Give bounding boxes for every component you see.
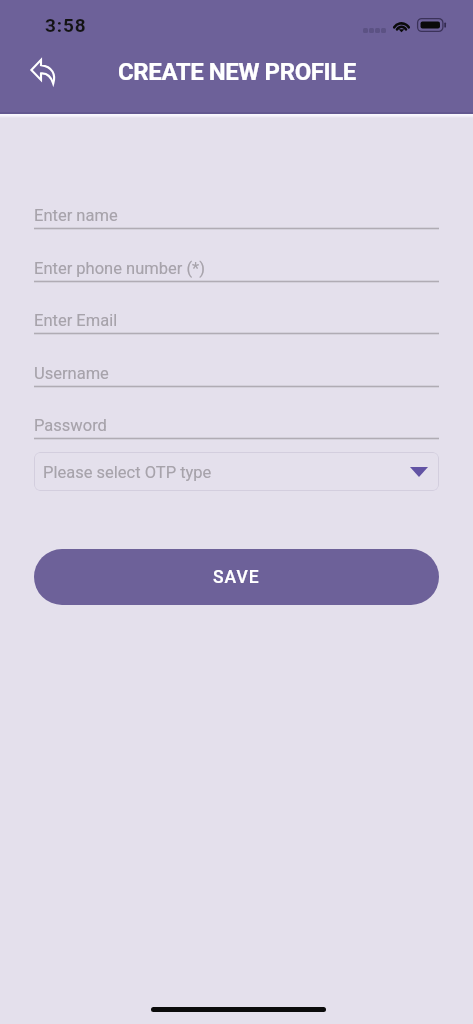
staticText: Username [34,364,109,383]
staticText: 3:58 [45,14,87,36]
staticText: Enter Email [34,311,118,330]
staticText: Enter phone number (*) [34,259,205,278]
staticText: Please select OTP type [43,463,212,482]
staticText: Password [34,416,107,435]
button[interactable]: Back [20,49,66,93]
button[interactable]: Please select OTP type [34,452,439,491]
button[interactable]: CREATE NEW PROFILE [118,58,356,86]
button[interactable]: Username [34,350,439,387]
staticText: SAVE [213,567,260,588]
button[interactable]: Password [34,402,439,439]
staticText: CREATE NEW PROFILE [118,58,356,86]
button[interactable]: Enter phone number (*) [34,245,439,282]
staticText: Enter name [34,206,118,225]
button[interactable]: Enter Email [34,297,439,334]
button[interactable]: Enter name [34,192,439,229]
button[interactable]: SAVE [34,549,439,605]
